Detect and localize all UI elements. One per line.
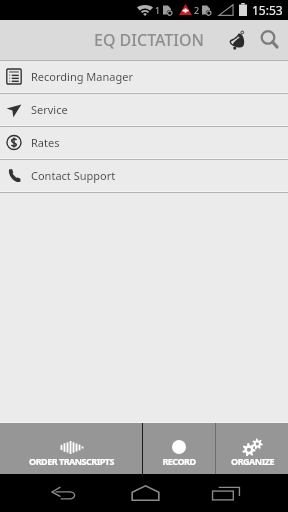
staticText: ORDER TRANSCRIPTS	[29, 455, 114, 467]
staticText: 1	[155, 4, 161, 16]
button[interactable]: Recording Manager	[0, 61, 288, 94]
button[interactable]: ORGANIZE	[216, 423, 288, 474]
button[interactable]: Contact Support	[0, 160, 288, 193]
button[interactable]: Back	[44, 474, 84, 512]
staticText: Recording Manager	[31, 69, 133, 84]
button[interactable]: Home	[125, 474, 165, 512]
staticText: EQ DICTATION	[94, 29, 204, 51]
staticText: 15:53	[252, 2, 283, 18]
button[interactable]: Recent apps	[206, 474, 246, 512]
staticText: RECORD	[162, 455, 196, 467]
button[interactable]: Notifications	[223, 27, 249, 53]
button[interactable]: Service	[0, 94, 288, 127]
staticText: Contact Support	[31, 168, 116, 183]
staticText: ORGANIZE	[231, 455, 274, 467]
staticText: Service	[31, 102, 68, 117]
button[interactable]: RECORD	[143, 423, 215, 474]
button[interactable]: Search	[255, 25, 285, 55]
button[interactable]: ORDER TRANSCRIPTS	[0, 423, 142, 474]
button[interactable]: Rates	[0, 127, 288, 160]
staticText: 2	[194, 4, 200, 16]
staticText: Rates	[31, 135, 60, 150]
